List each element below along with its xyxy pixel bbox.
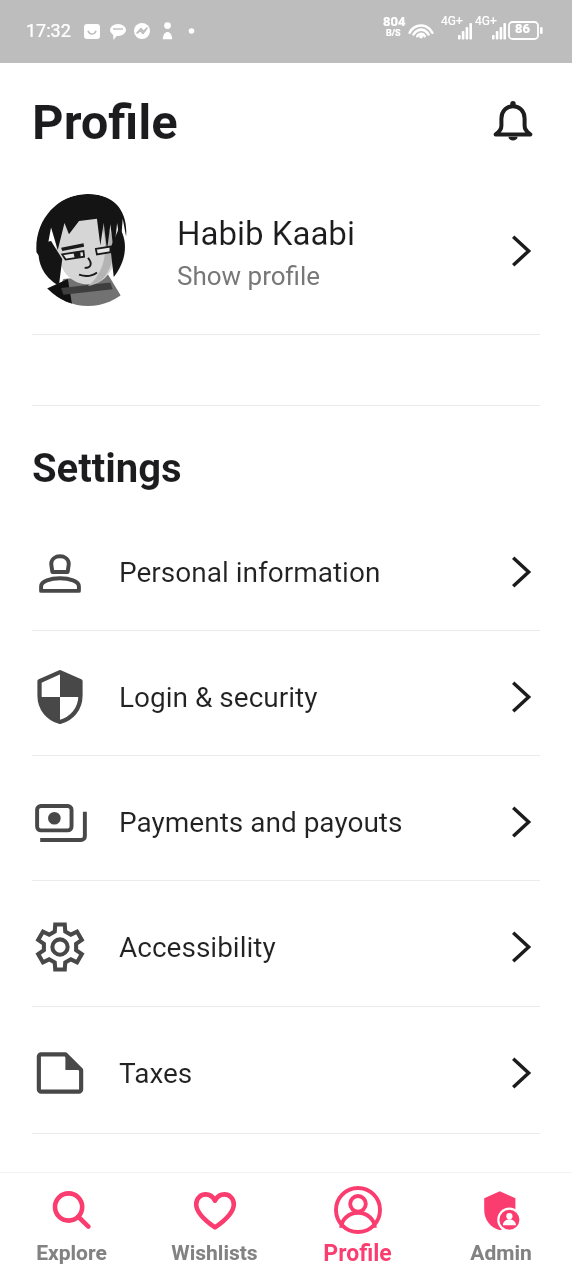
- button[interactable]: Admin: [429, 1187, 572, 1266]
- staticText: Profile: [32, 94, 178, 151]
- button[interactable]: Login & security: [0, 630, 572, 755]
- button[interactable]: Explore: [0, 1187, 143, 1266]
- staticText: Show profile: [177, 261, 321, 291]
- button[interactable]: Profile: [286, 1186, 429, 1267]
- staticText: 4G+: [475, 14, 497, 28]
- staticText: Personal information: [119, 556, 381, 589]
- staticText: 86: [515, 21, 530, 36]
- button[interactable]: Personal information: [0, 505, 572, 630]
- button[interactable]: Taxes: [0, 1006, 572, 1131]
- staticText: Habib Kaabi: [177, 214, 355, 253]
- button[interactable]: Accessibility: [0, 880, 572, 1005]
- staticText: Payments and payouts: [119, 806, 403, 839]
- staticText: 4G+: [441, 14, 463, 28]
- staticText: Login & security: [119, 681, 318, 714]
- staticText: Wishlists: [171, 1241, 258, 1266]
- button[interactable]: Wishlists: [143, 1187, 286, 1266]
- button[interactable]: Payments and payouts: [0, 755, 572, 880]
- button[interactable]: Notifications: [489, 97, 537, 145]
- staticText: 804: [383, 14, 406, 29]
- staticText: Explore: [36, 1241, 107, 1266]
- staticText: B/S: [386, 28, 401, 39]
- staticText: Profile: [323, 1240, 392, 1267]
- staticText: Accessibility: [119, 931, 276, 964]
- staticText: Admin: [470, 1241, 532, 1266]
- staticText: Taxes: [119, 1057, 193, 1090]
- button[interactable]: Habib Kaabi: [0, 178, 572, 313]
- staticText: Settings: [32, 445, 182, 492]
- staticText: 17:32: [26, 20, 71, 41]
